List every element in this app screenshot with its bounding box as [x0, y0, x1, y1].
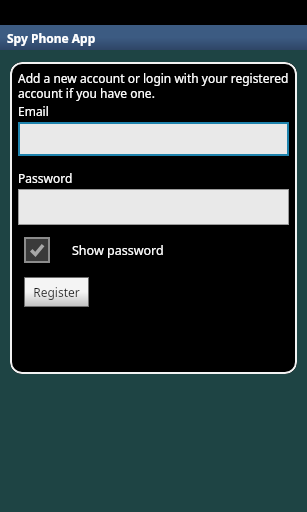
- staticText: Add a new account or login with your reg…: [18, 70, 289, 101]
- button[interactable]: [18, 122, 289, 156]
- staticText: Email: [18, 103, 49, 119]
- staticText: Password: [18, 170, 73, 186]
- button[interactable]: [18, 189, 289, 225]
- button[interactable]: Show password: [24, 237, 164, 263]
- button[interactable]: Register: [24, 277, 89, 307]
- staticText: Show password: [72, 242, 164, 259]
- staticText: Spy Phone App: [7, 30, 96, 46]
- staticText: Register: [33, 284, 80, 300]
